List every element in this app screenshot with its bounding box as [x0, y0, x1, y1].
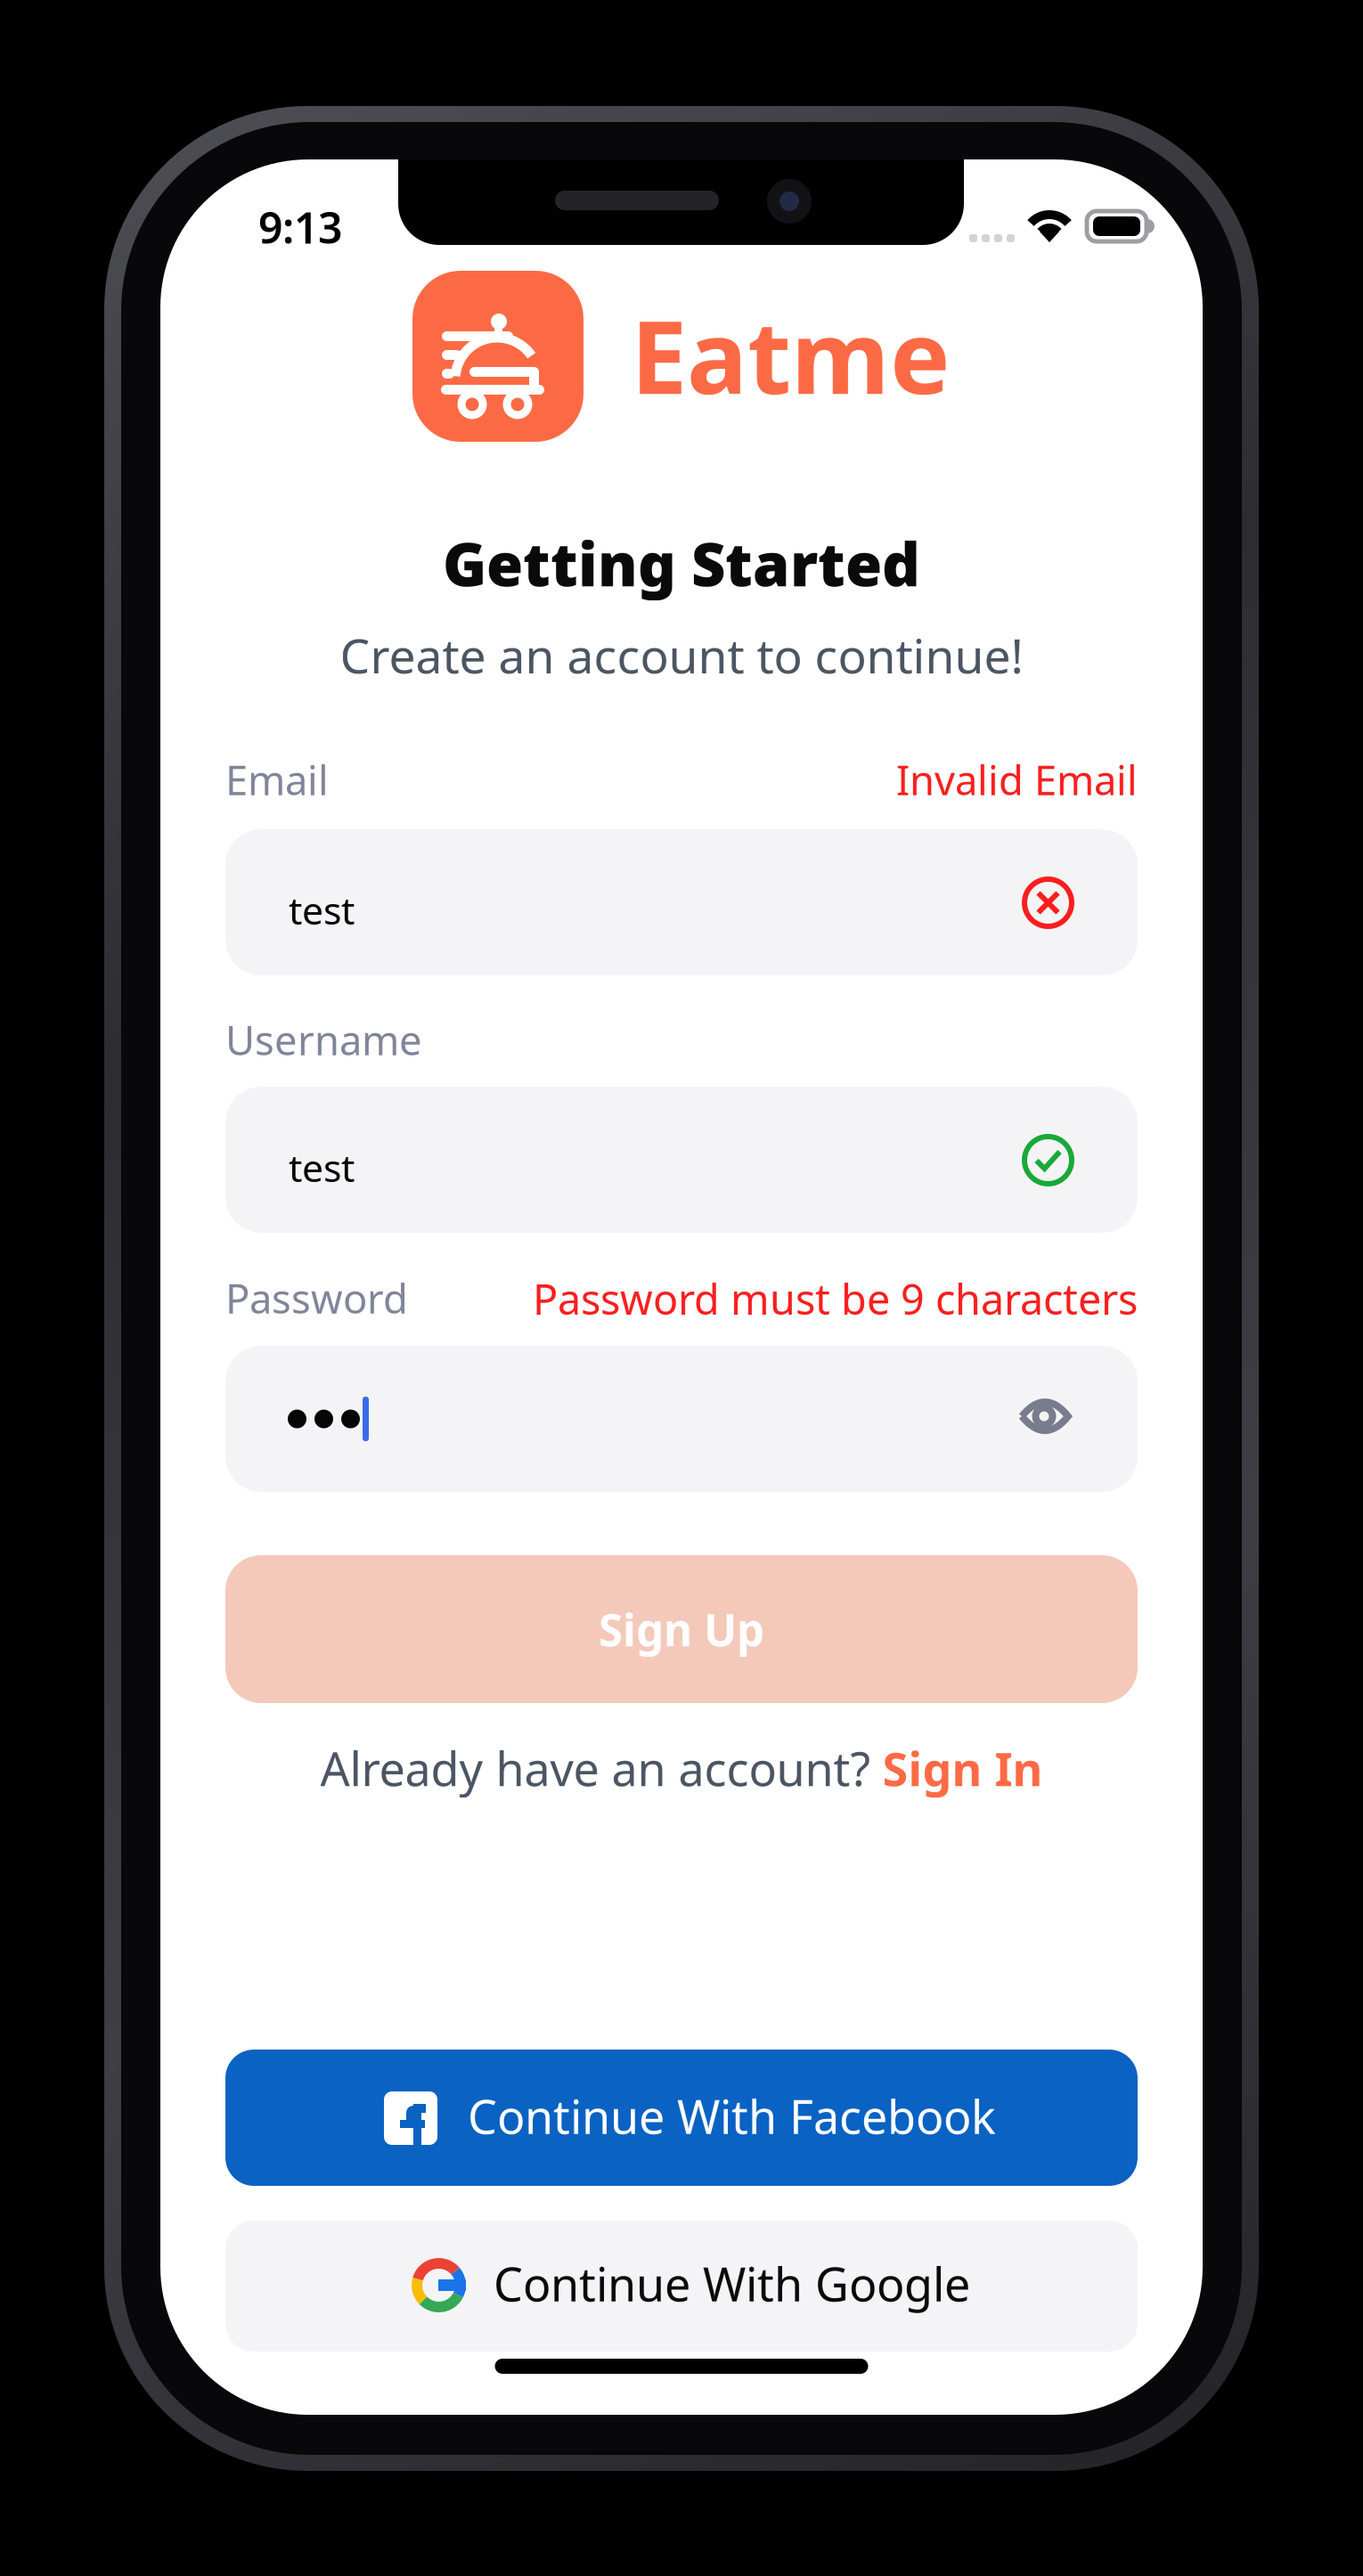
staticText: Eatme	[631, 288, 951, 422]
button[interactable]: Sign Up	[225, 1555, 1138, 1703]
staticText: Email	[225, 753, 329, 806]
button[interactable]: Continue With Google	[225, 2221, 1138, 2352]
button[interactable]: Already have an account?	[160, 1740, 1203, 1797]
staticText: Password must be 9 characters	[533, 1271, 1138, 1326]
staticText: test	[289, 884, 355, 935]
staticText: Continue With Facebook	[468, 2085, 996, 2147]
staticText: 9:13	[258, 199, 342, 255]
staticText: Invalid Email	[896, 753, 1138, 806]
staticText: Already have an account?	[320, 1737, 871, 1799]
staticText: Password	[225, 1271, 408, 1325]
staticText: Continue With Google	[494, 2253, 970, 2314]
staticText: Sign Up	[599, 1600, 764, 1658]
staticText: Getting Started	[443, 524, 920, 603]
staticText: Create an account to continue!	[340, 624, 1023, 687]
button[interactable]: Continue With Facebook	[225, 2050, 1138, 2186]
staticText: Sign In	[882, 1737, 1043, 1799]
staticText: Username	[225, 1013, 422, 1066]
staticText: test	[289, 1142, 355, 1192]
